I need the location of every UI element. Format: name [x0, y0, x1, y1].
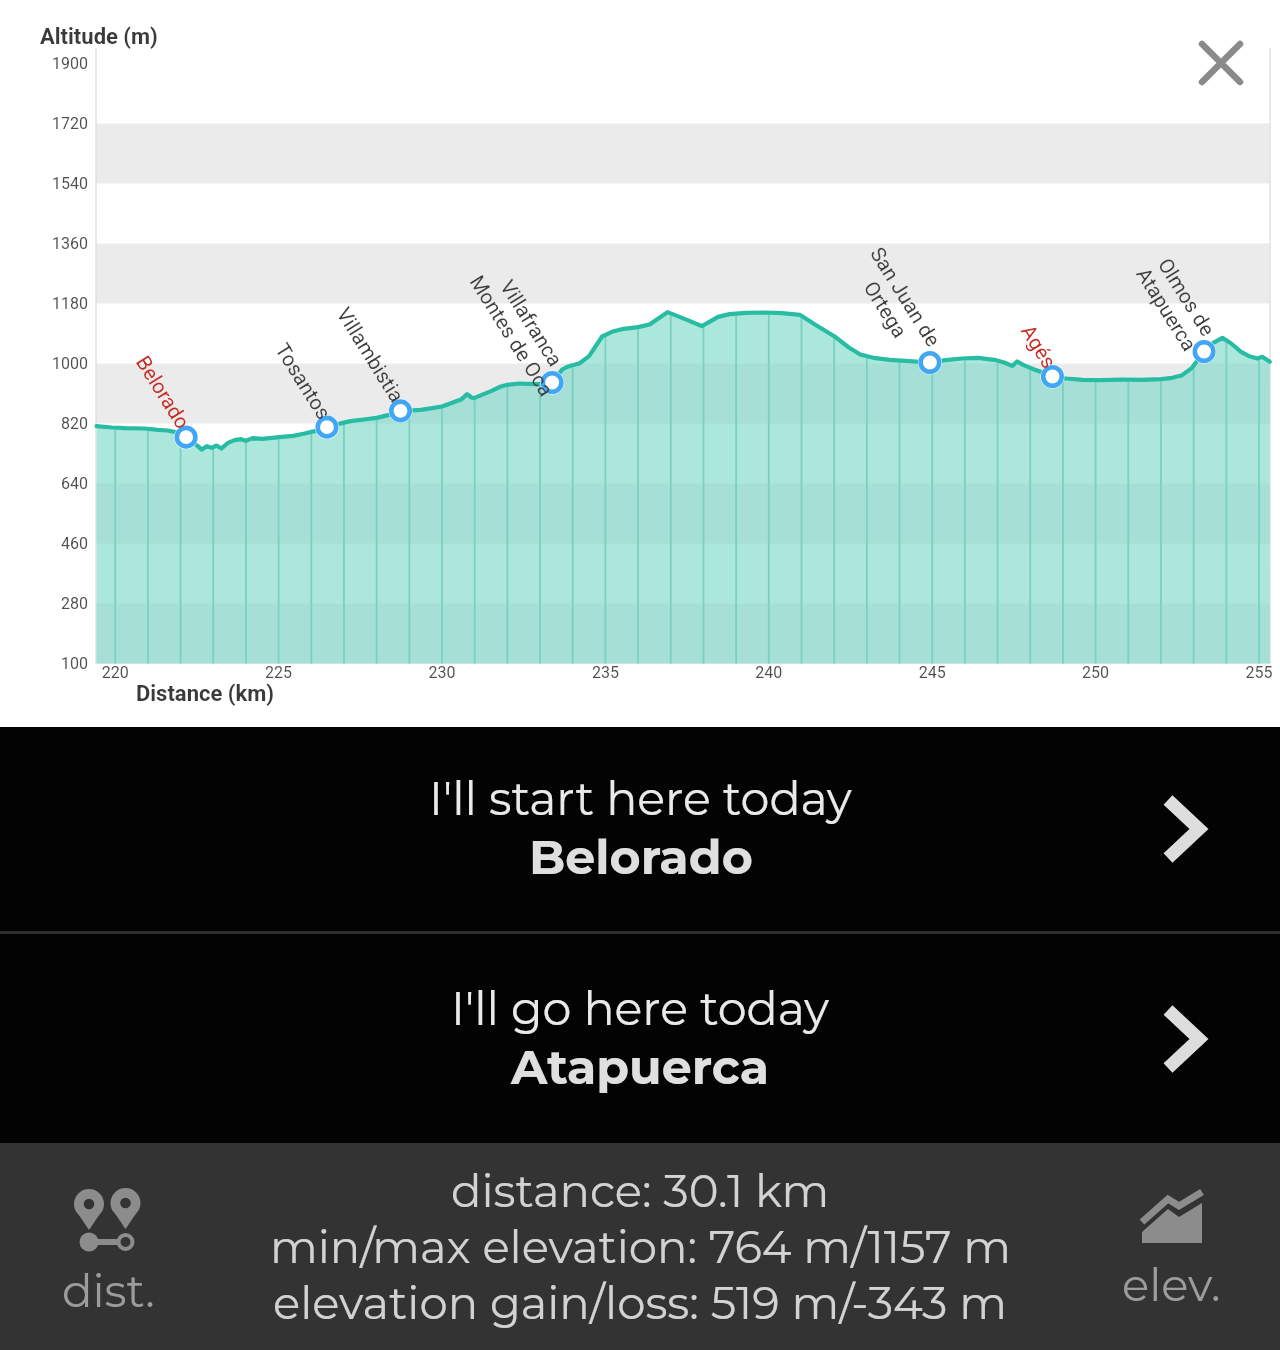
staticText: elevation gain/loss: 519 m/-343 m: [273, 1275, 1008, 1330]
staticText: elev.: [1122, 1257, 1221, 1312]
button[interactable]: dist.: [36, 1143, 181, 1350]
staticText: Belorado: [529, 828, 753, 886]
button[interactable]: I'll start here today: [0, 727, 1280, 931]
staticText: dist.: [62, 1263, 155, 1318]
button[interactable]: elev.: [1099, 1143, 1244, 1350]
staticText: Atapuerca: [511, 1038, 770, 1096]
staticText: I'll start here today: [429, 770, 852, 826]
button[interactable]: I'll go here today: [0, 934, 1280, 1143]
staticText: min/max elevation: 764 m/1157 m: [270, 1219, 1011, 1274]
staticText: distance: 30.1 km: [451, 1163, 830, 1218]
button[interactable]: [1185, 27, 1257, 99]
staticText: I'll go here today: [451, 980, 829, 1036]
